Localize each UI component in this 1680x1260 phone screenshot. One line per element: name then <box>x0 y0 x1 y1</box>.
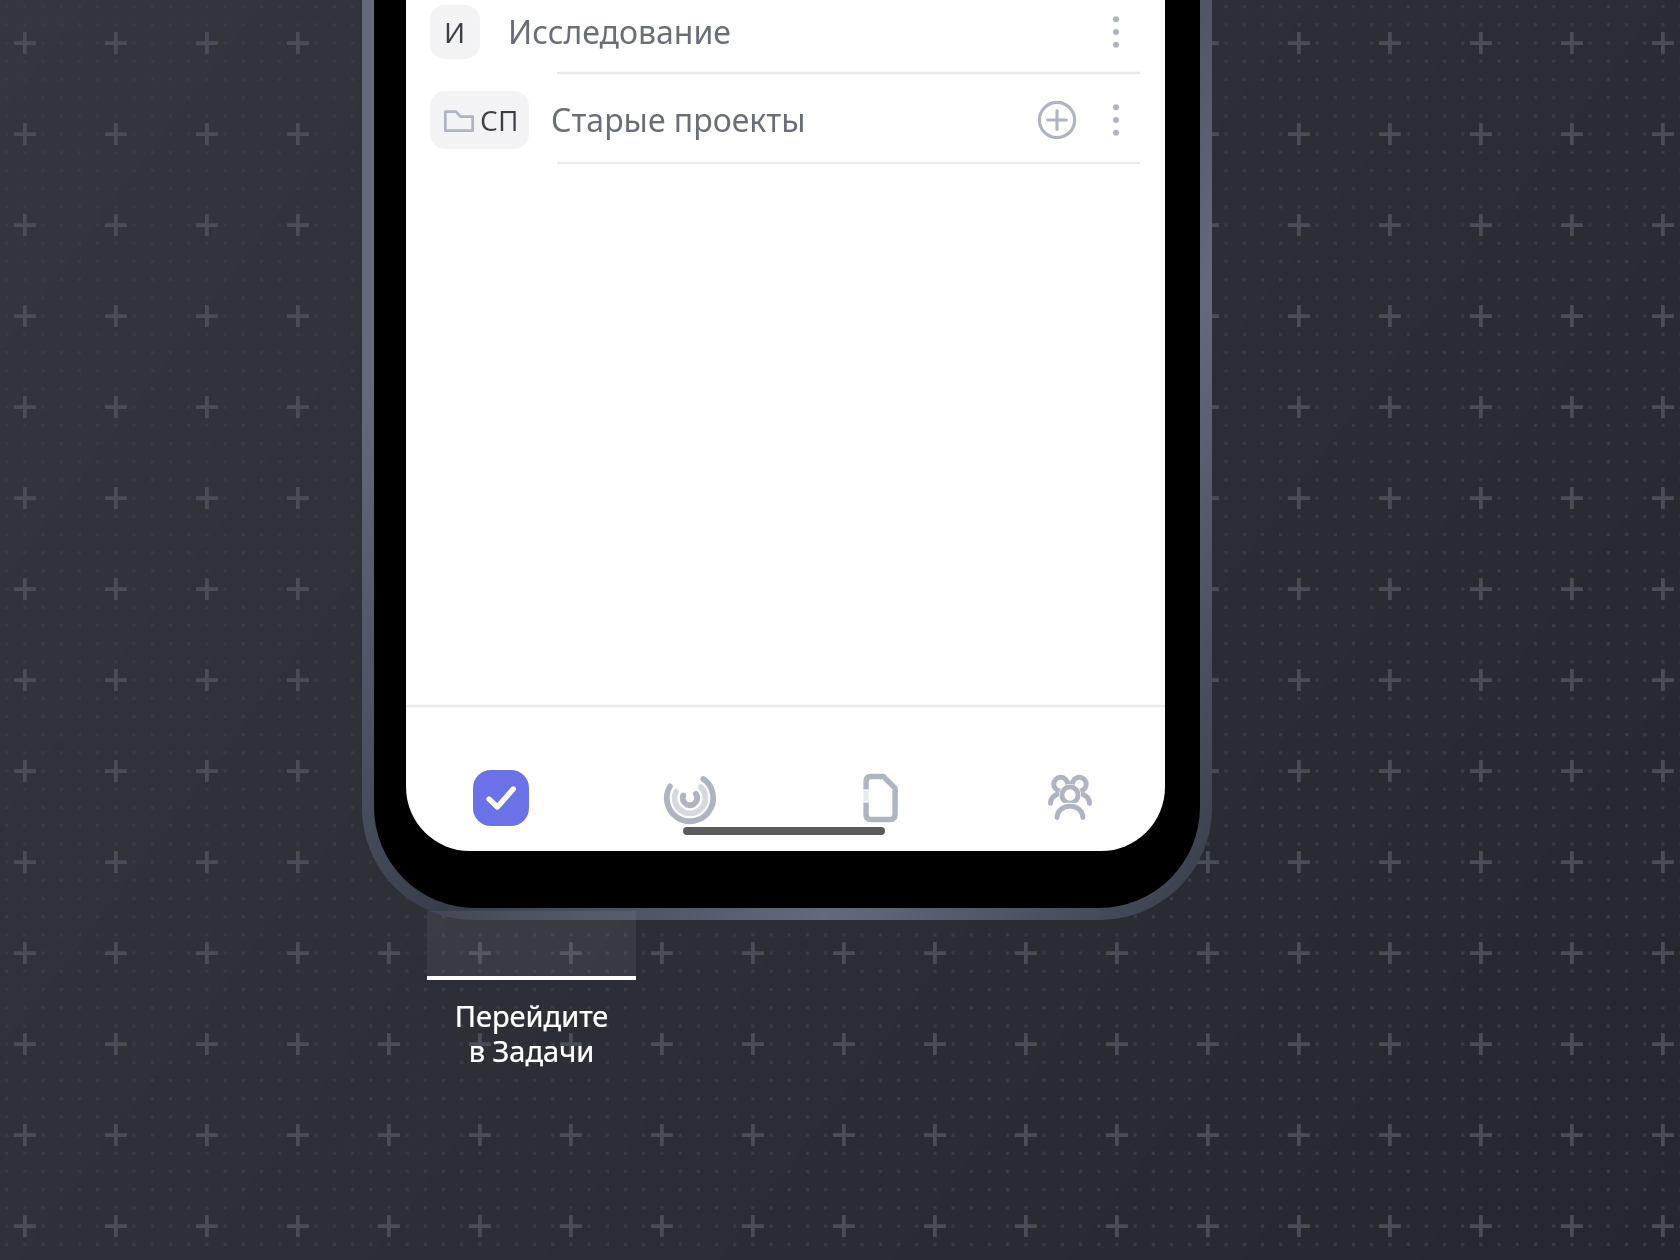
button[interactable]: Ещё <box>1090 94 1142 146</box>
button[interactable]: СП <box>430 78 1142 162</box>
staticText: Старые проекты <box>551 98 806 142</box>
staticText: Перейдите в Задачи <box>427 996 636 1071</box>
button[interactable]: И <box>430 0 1142 64</box>
staticText: И <box>444 13 466 51</box>
button[interactable]: Цели <box>595 762 785 834</box>
staticText: СП <box>480 101 519 139</box>
staticText: Исследование <box>508 10 731 54</box>
button[interactable]: Документы <box>785 762 975 834</box>
button[interactable]: Задачи <box>406 762 595 834</box>
button[interactable]: Команда <box>975 762 1165 834</box>
button[interactable]: Добавить <box>1030 93 1084 147</box>
button[interactable]: Ещё <box>1090 6 1142 58</box>
